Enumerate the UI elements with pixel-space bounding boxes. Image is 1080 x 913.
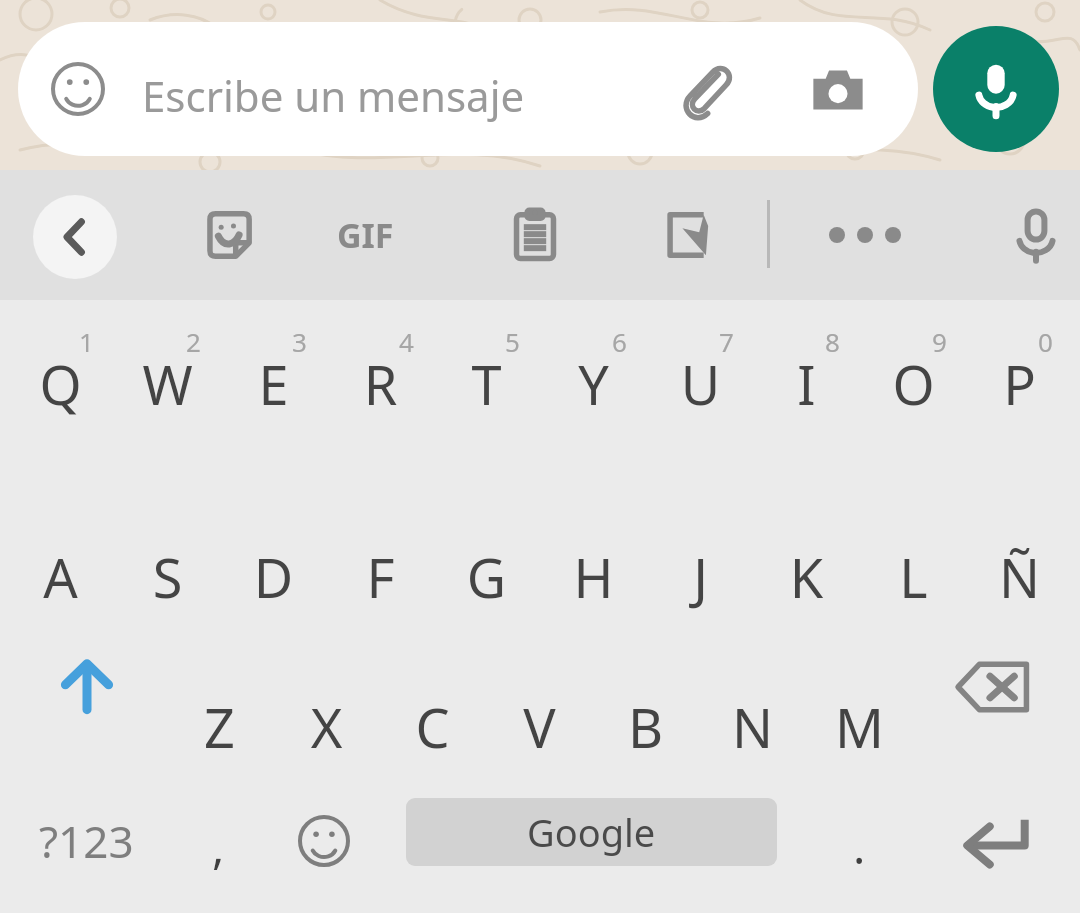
button[interactable]: Emoji <box>48 59 108 119</box>
staticText: Q <box>7 347 114 421</box>
button[interactable]: More options <box>834 192 896 278</box>
staticText: L <box>860 540 967 614</box>
button[interactable]: T <box>433 302 540 457</box>
staticText: Z <box>166 690 273 764</box>
button[interactable]: G <box>433 457 540 612</box>
staticText: 8 <box>779 324 886 359</box>
staticText: Escribe un mensaje <box>142 67 525 124</box>
button[interactable]: Stickers <box>182 192 276 278</box>
staticText: T <box>433 347 540 421</box>
button[interactable]: . <box>806 768 912 913</box>
staticText: ?123 <box>39 811 134 871</box>
staticText: P <box>966 347 1073 421</box>
staticText: R <box>327 347 434 421</box>
button[interactable]: D <box>220 457 327 612</box>
staticText: B <box>592 690 699 764</box>
button[interactable]: X <box>273 612 380 762</box>
staticText: W <box>114 347 221 421</box>
staticText: X <box>273 690 380 764</box>
button[interactable]: Clipboard <box>488 192 582 278</box>
button[interactable]: A <box>7 457 114 612</box>
staticText: A <box>7 540 114 614</box>
staticText: I <box>753 347 860 421</box>
button[interactable]: Voice message <box>933 26 1059 152</box>
staticText: G <box>433 540 540 614</box>
button[interactable]: R <box>327 302 434 457</box>
button[interactable]: K <box>753 457 860 612</box>
button[interactable]: Voice input <box>989 192 1080 278</box>
staticText: N <box>699 690 806 764</box>
staticText: Ñ <box>966 540 1073 614</box>
staticText: K <box>753 540 860 614</box>
staticText: , <box>212 815 225 878</box>
staticText: 7 <box>673 324 780 359</box>
button[interactable]: Enter <box>920 768 1070 913</box>
button[interactable]: Y <box>540 302 647 457</box>
staticText: V <box>486 690 593 764</box>
staticText: Y <box>540 347 647 421</box>
staticText: F <box>327 540 434 614</box>
button[interactable]: H <box>540 457 647 612</box>
staticText: GIF <box>337 212 394 258</box>
button[interactable]: B <box>592 612 699 762</box>
staticText: D <box>220 540 327 614</box>
button[interactable]: Ñ <box>966 457 1073 612</box>
staticText: O <box>860 347 967 421</box>
staticText: 3 <box>246 324 353 359</box>
staticText: 1 <box>33 324 140 359</box>
button[interactable]: E <box>220 302 327 457</box>
staticText: 4 <box>353 324 460 359</box>
button[interactable]: Q <box>7 302 114 457</box>
button[interactable]: V <box>486 612 593 762</box>
button[interactable]: J <box>647 457 754 612</box>
staticText: 2 <box>140 324 247 359</box>
staticText: C <box>379 690 486 764</box>
button[interactable]: Backspace <box>913 612 1073 762</box>
staticText: H <box>540 540 647 614</box>
staticText: J <box>647 540 754 614</box>
button[interactable]: Back <box>33 195 117 279</box>
staticText: M <box>806 690 913 764</box>
button[interactable]: M <box>806 612 913 762</box>
button[interactable]: N <box>699 612 806 762</box>
button[interactable]: Emoji <box>18 22 918 156</box>
button[interactable]: Google <box>406 798 777 866</box>
button[interactable]: P <box>966 302 1073 457</box>
staticText: 5 <box>459 324 566 359</box>
staticText: 9 <box>886 324 993 359</box>
button[interactable]: Attach <box>676 60 736 120</box>
button[interactable]: Handwriting <box>641 192 735 278</box>
staticText: S <box>114 540 221 614</box>
button[interactable]: Emoji keyboard <box>271 768 377 913</box>
staticText: U <box>647 347 754 421</box>
staticText: E <box>220 347 327 421</box>
button[interactable]: C <box>379 612 486 762</box>
button[interactable]: Camera <box>808 60 868 120</box>
staticText: . <box>853 815 866 878</box>
button[interactable]: , <box>165 768 271 913</box>
button[interactable]: U <box>647 302 754 457</box>
button[interactable]: F <box>327 457 434 612</box>
button[interactable]: S <box>114 457 221 612</box>
button[interactable]: Z <box>166 612 273 762</box>
button[interactable]: I <box>753 302 860 457</box>
button[interactable]: O <box>860 302 967 457</box>
staticText: Google <box>527 806 656 858</box>
button[interactable]: L <box>860 457 967 612</box>
button[interactable]: W <box>114 302 221 457</box>
staticText: 6 <box>566 324 673 359</box>
button[interactable]: Shift <box>7 612 167 762</box>
button[interactable]: ?123 <box>7 768 165 913</box>
button[interactable]: GIF <box>320 192 410 278</box>
staticText: 0 <box>992 324 1080 359</box>
